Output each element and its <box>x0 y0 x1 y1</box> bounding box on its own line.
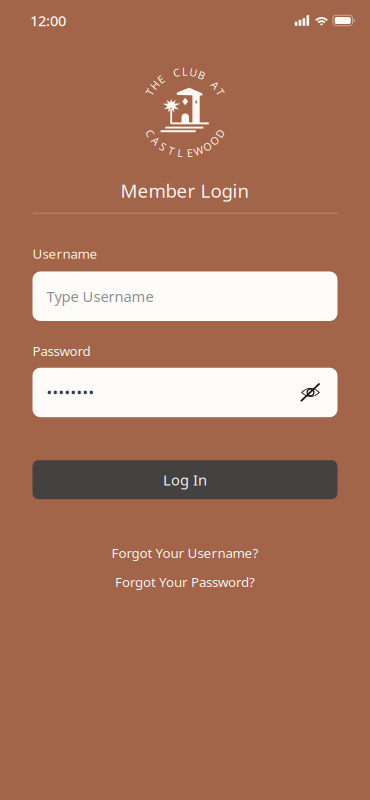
staticText: U <box>189 65 197 79</box>
staticText: C <box>173 65 180 79</box>
staticText: Log In <box>163 470 207 489</box>
staticText: T <box>168 144 174 158</box>
staticText: E <box>187 146 193 160</box>
staticText: T <box>217 85 223 99</box>
staticText: H <box>151 78 159 92</box>
button[interactable]: Forgot Your Username? <box>111 544 258 561</box>
staticText: Username <box>32 245 97 262</box>
staticText: A <box>152 134 159 148</box>
staticText: D <box>216 126 224 140</box>
staticText: W <box>194 144 204 158</box>
button[interactable]: Log In <box>32 460 337 499</box>
staticText: Forgot Your Password? <box>115 573 255 590</box>
button[interactable]: Forgot Your Password? <box>115 573 255 590</box>
staticText: Forgot Your Username? <box>111 544 258 561</box>
staticText: Password <box>32 342 90 360</box>
staticText: A <box>212 78 219 92</box>
staticText: O <box>203 139 211 154</box>
staticText: Member Login <box>120 178 249 203</box>
staticText: S <box>160 139 166 154</box>
staticText: E <box>158 72 164 86</box>
button[interactable]: Show password <box>291 368 329 417</box>
staticText <box>207 72 210 86</box>
staticText: C <box>146 126 153 140</box>
staticText: •••••••• <box>46 383 94 402</box>
staticText: 12:00 <box>30 11 66 30</box>
staticText: L <box>182 64 188 79</box>
staticText: O <box>210 134 218 148</box>
staticText: Type Username <box>46 286 153 306</box>
staticText: B <box>198 68 205 82</box>
staticText: L <box>177 146 183 160</box>
staticText: T <box>147 85 153 99</box>
